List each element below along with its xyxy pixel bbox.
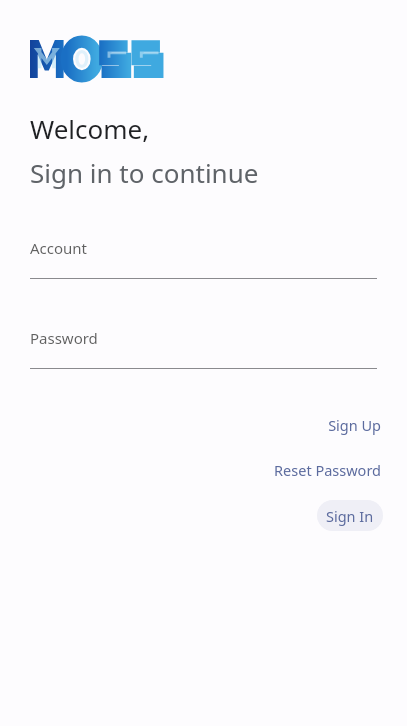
button[interactable]: Sign Up (322, 411, 387, 439)
staticText: Reset Password (274, 460, 381, 480)
staticText: Welcome, (30, 111, 150, 146)
button[interactable]: Sign In (317, 500, 383, 531)
staticText: Sign Up (328, 415, 381, 435)
button[interactable]: Password (30, 328, 377, 369)
button[interactable]: Account (30, 238, 377, 279)
staticText: Sign In (326, 506, 374, 526)
staticText: Account (30, 238, 88, 258)
staticText: Password (30, 328, 98, 348)
button[interactable]: Reset Password (268, 456, 387, 484)
staticText: Sign in to continue (30, 155, 259, 190)
